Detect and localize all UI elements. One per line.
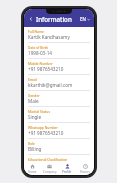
staticText: Email	[28, 77, 37, 81]
staticText: Mobile Number	[28, 61, 53, 65]
staticText: Full Name	[28, 29, 44, 33]
staticText: Information	[36, 15, 72, 23]
button[interactable]: Marital Status	[24, 107, 94, 123]
button[interactable]: EN	[79, 16, 91, 22]
staticText: Single	[28, 114, 42, 120]
staticText: Marital Status	[28, 109, 50, 113]
button[interactable]: Educational Qualification	[24, 155, 94, 161]
button[interactable]: Email	[24, 75, 94, 91]
staticText: Gender	[28, 93, 40, 97]
button[interactable]: Profile	[58, 161, 76, 175]
staticText: kkarthik@gmail.com	[28, 82, 73, 88]
button[interactable]: Role	[24, 139, 94, 155]
staticText: Home	[28, 170, 37, 174]
staticText: +91 9876543210	[28, 130, 64, 136]
button[interactable]: Company	[41, 161, 58, 175]
staticText: EN	[80, 16, 86, 22]
button[interactable]: Mobile Number	[24, 59, 94, 75]
staticText: Kartik Kandhasamy	[28, 34, 70, 40]
staticText: Profile	[62, 170, 72, 174]
staticText: Male	[28, 98, 39, 104]
button[interactable]: Full Name	[24, 27, 94, 43]
button[interactable]: Whatsapp Number	[24, 123, 94, 139]
staticText: +91 9876543210	[28, 66, 64, 72]
staticText: 1998-03-14	[28, 50, 52, 56]
button[interactable]: History	[76, 161, 94, 175]
staticText: Role	[28, 141, 35, 145]
button[interactable]: Gender	[24, 91, 94, 107]
staticText: History	[80, 170, 91, 174]
staticText: Educational Qualification	[28, 157, 68, 161]
staticText: Billing	[28, 146, 42, 152]
button[interactable]: Home	[24, 161, 41, 175]
staticText: Whatsapp Number	[28, 125, 58, 129]
staticText: Date of Birth	[28, 45, 49, 49]
staticText: Company	[43, 170, 57, 174]
button[interactable]: Back	[27, 15, 34, 22]
button[interactable]: Date of Birth	[24, 43, 94, 59]
